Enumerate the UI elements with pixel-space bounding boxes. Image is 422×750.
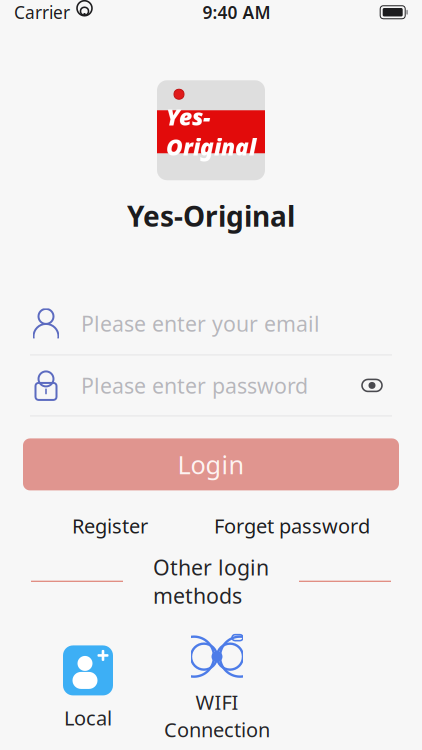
staticText: Forget password (214, 512, 370, 539)
staticText: WIFI (195, 689, 238, 715)
staticText: Register (72, 512, 148, 539)
staticText: 9:40 AM (203, 1, 271, 24)
staticText: Carrier (14, 1, 70, 24)
staticText: Login (177, 448, 244, 481)
staticText: Connection (164, 716, 270, 743)
staticText: Please enter password (81, 371, 308, 400)
button[interactable]: Register (62, 506, 158, 545)
button[interactable]: Login (0, 438, 422, 490)
button[interactable]: Forget password (204, 506, 380, 545)
staticText: Yes-Original (166, 102, 256, 162)
staticText: Please enter your email (81, 309, 320, 338)
staticText: Local (64, 704, 112, 731)
staticText: Yes-Original (127, 197, 295, 234)
button[interactable]: WIFI (162, 634, 272, 743)
button[interactable]: Local (40, 645, 136, 731)
staticText: Other login methods (153, 553, 269, 610)
button[interactable]: Show password (355, 368, 389, 402)
